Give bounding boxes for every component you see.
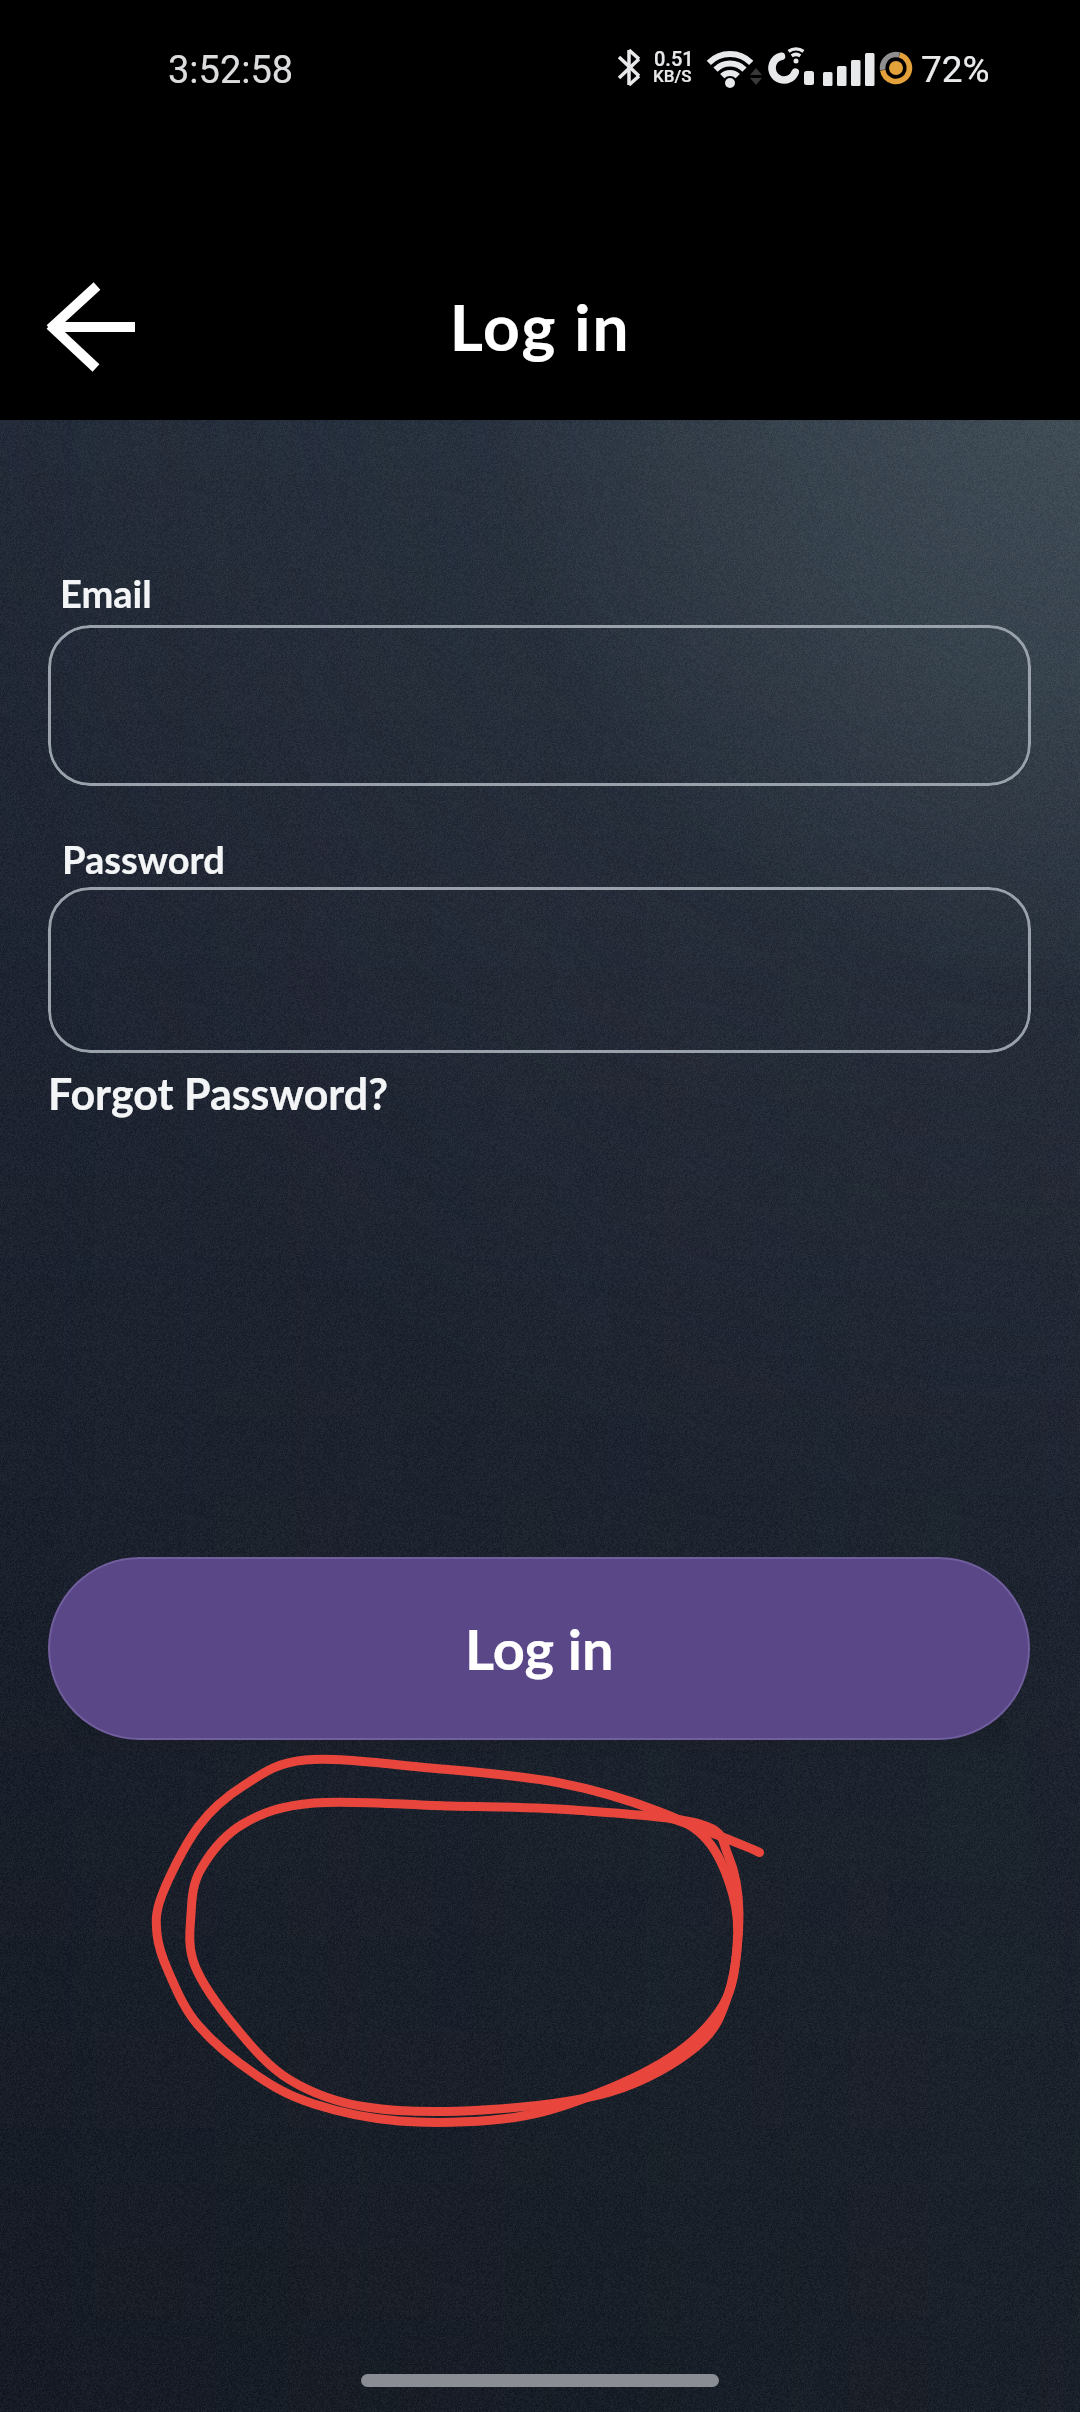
staticText: 0.51 xyxy=(654,47,694,70)
button[interactable] xyxy=(48,625,1031,786)
staticText: Email xyxy=(60,570,152,616)
staticText: 72% xyxy=(921,48,990,91)
button[interactable]: Forgot Password? xyxy=(48,1068,389,1120)
staticText: KB/S xyxy=(653,66,692,86)
staticText: Password xyxy=(62,836,225,882)
button[interactable]: Log in xyxy=(48,1557,1030,1740)
staticText: 3:52:58 xyxy=(168,48,294,93)
button[interactable] xyxy=(48,887,1031,1053)
staticText: Log in xyxy=(465,1615,614,1682)
staticText: Log in xyxy=(0,288,1080,365)
button[interactable] xyxy=(30,295,160,395)
